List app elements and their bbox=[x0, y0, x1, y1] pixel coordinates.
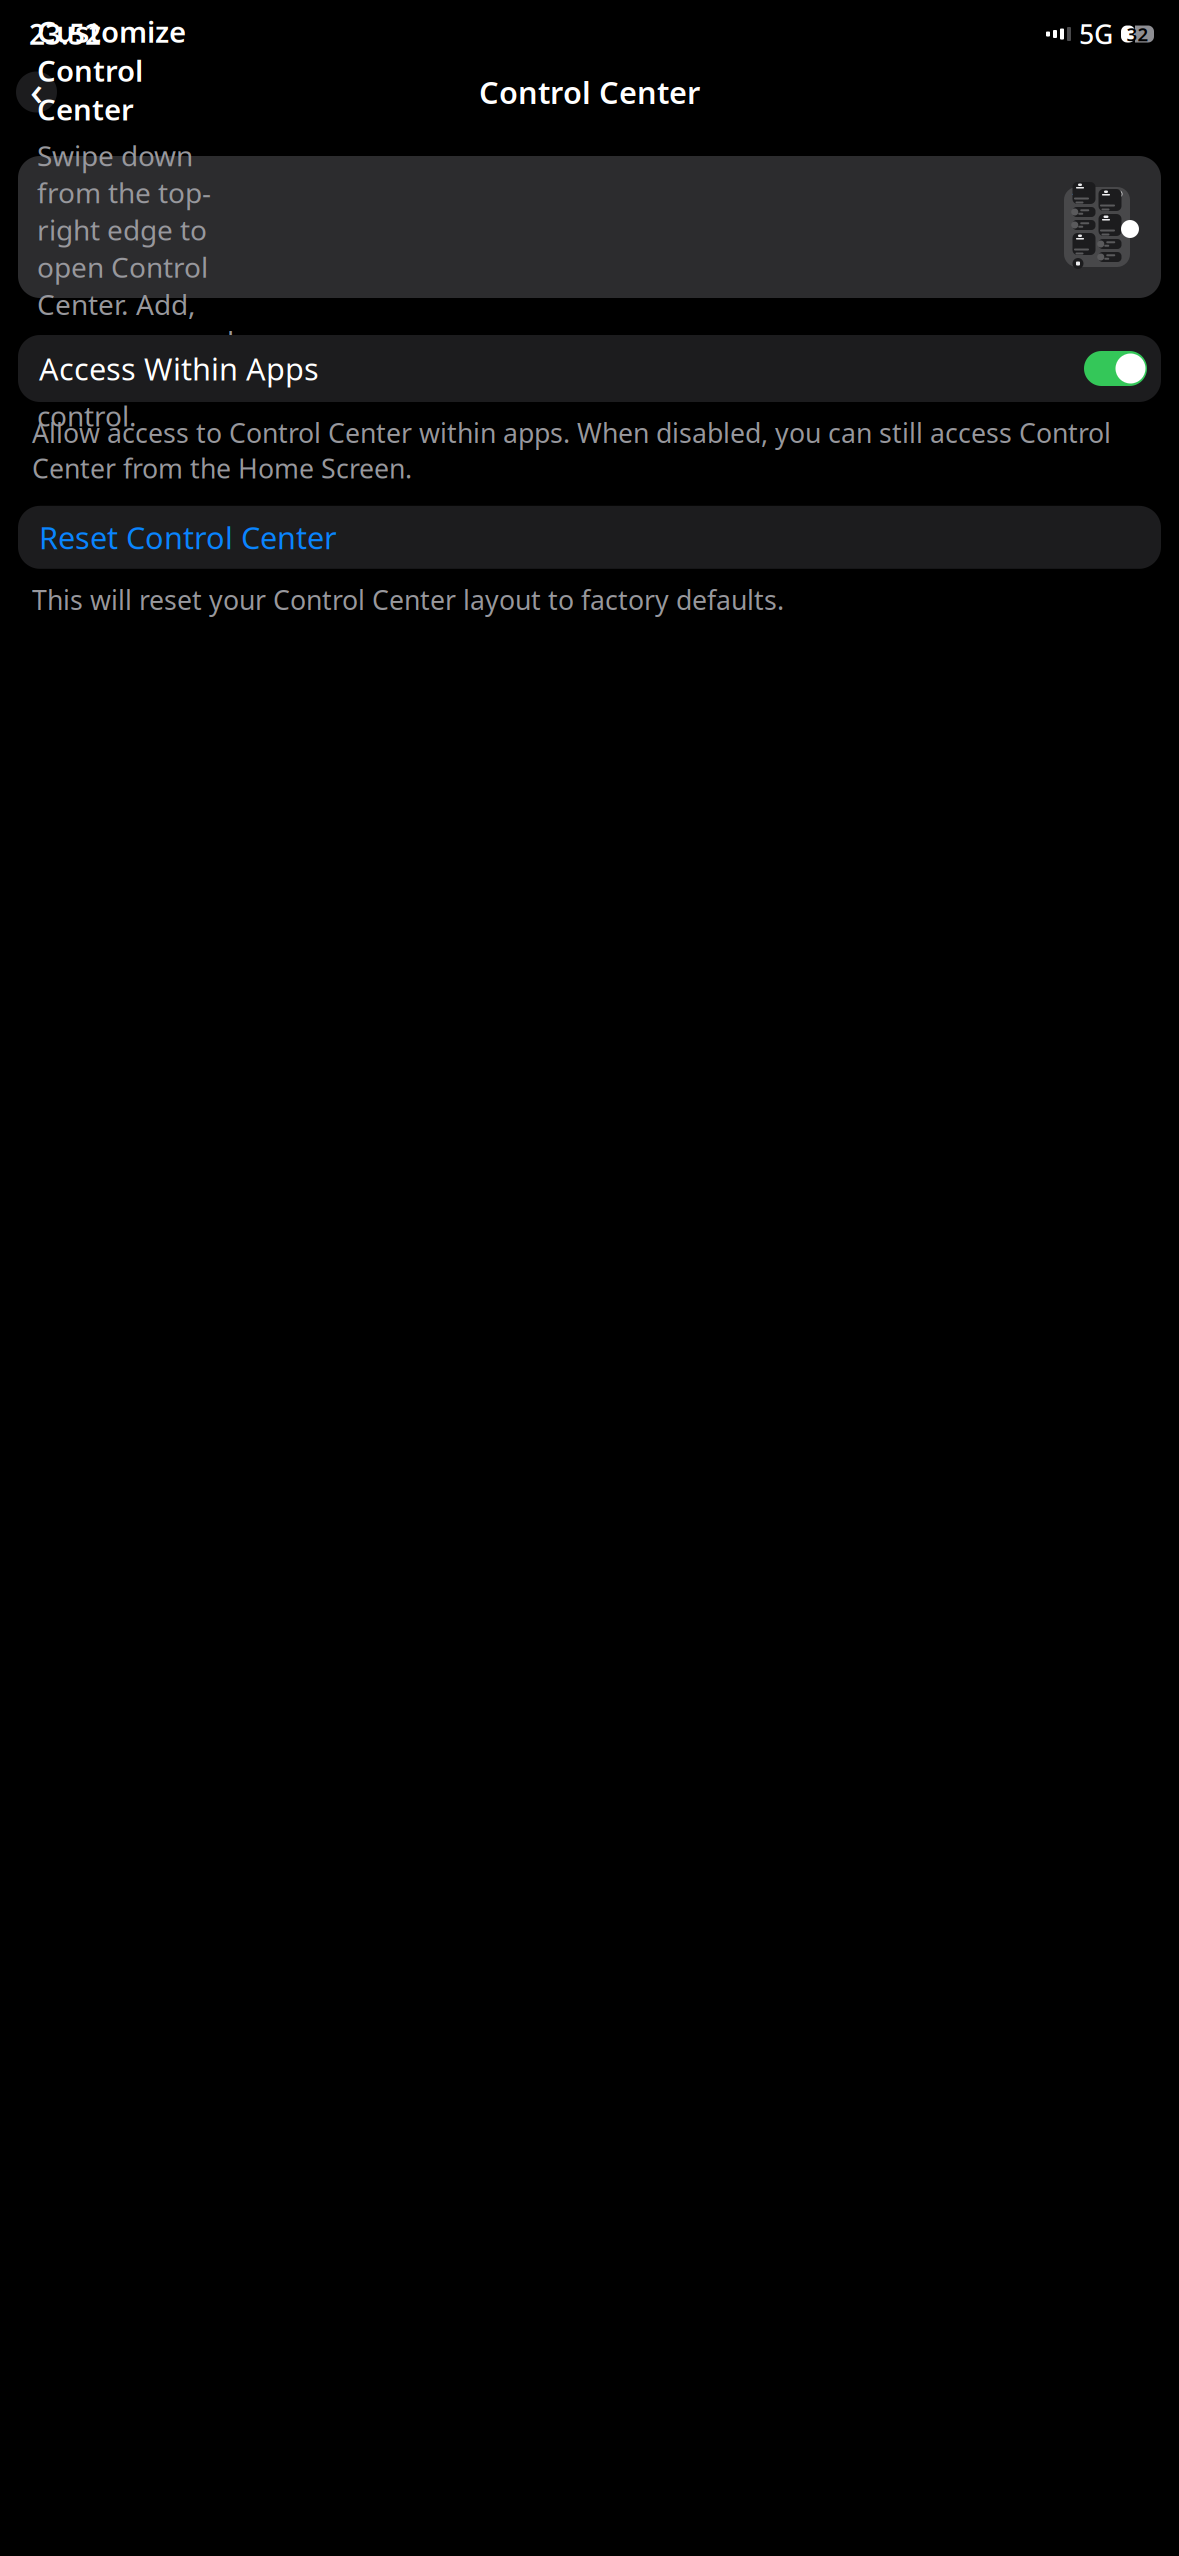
staticText: Allow access to Control Center within ap… bbox=[32, 415, 1111, 486]
staticText: Access Within Apps bbox=[39, 348, 319, 389]
staticText: 5G bbox=[1079, 16, 1113, 52]
button[interactable]: Reset Control Center bbox=[18, 506, 1161, 569]
button[interactable]: Access Within Apps bbox=[18, 335, 1161, 402]
button[interactable]: Back bbox=[16, 71, 57, 112]
staticText: Control Center bbox=[479, 72, 700, 112]
staticText: 32 bbox=[1126, 22, 1148, 46]
staticText: Reset Control Center bbox=[39, 517, 337, 558]
staticText: 23.52 bbox=[29, 15, 101, 53]
staticText: + bbox=[1072, 186, 1079, 202]
staticText: This will reset your Control Center layo… bbox=[32, 582, 784, 617]
staticText: ‹ bbox=[30, 63, 43, 116]
staticText: Customize Control Center bbox=[37, 12, 186, 129]
staticText: Swipe down from the top-right edge to op… bbox=[37, 137, 234, 434]
